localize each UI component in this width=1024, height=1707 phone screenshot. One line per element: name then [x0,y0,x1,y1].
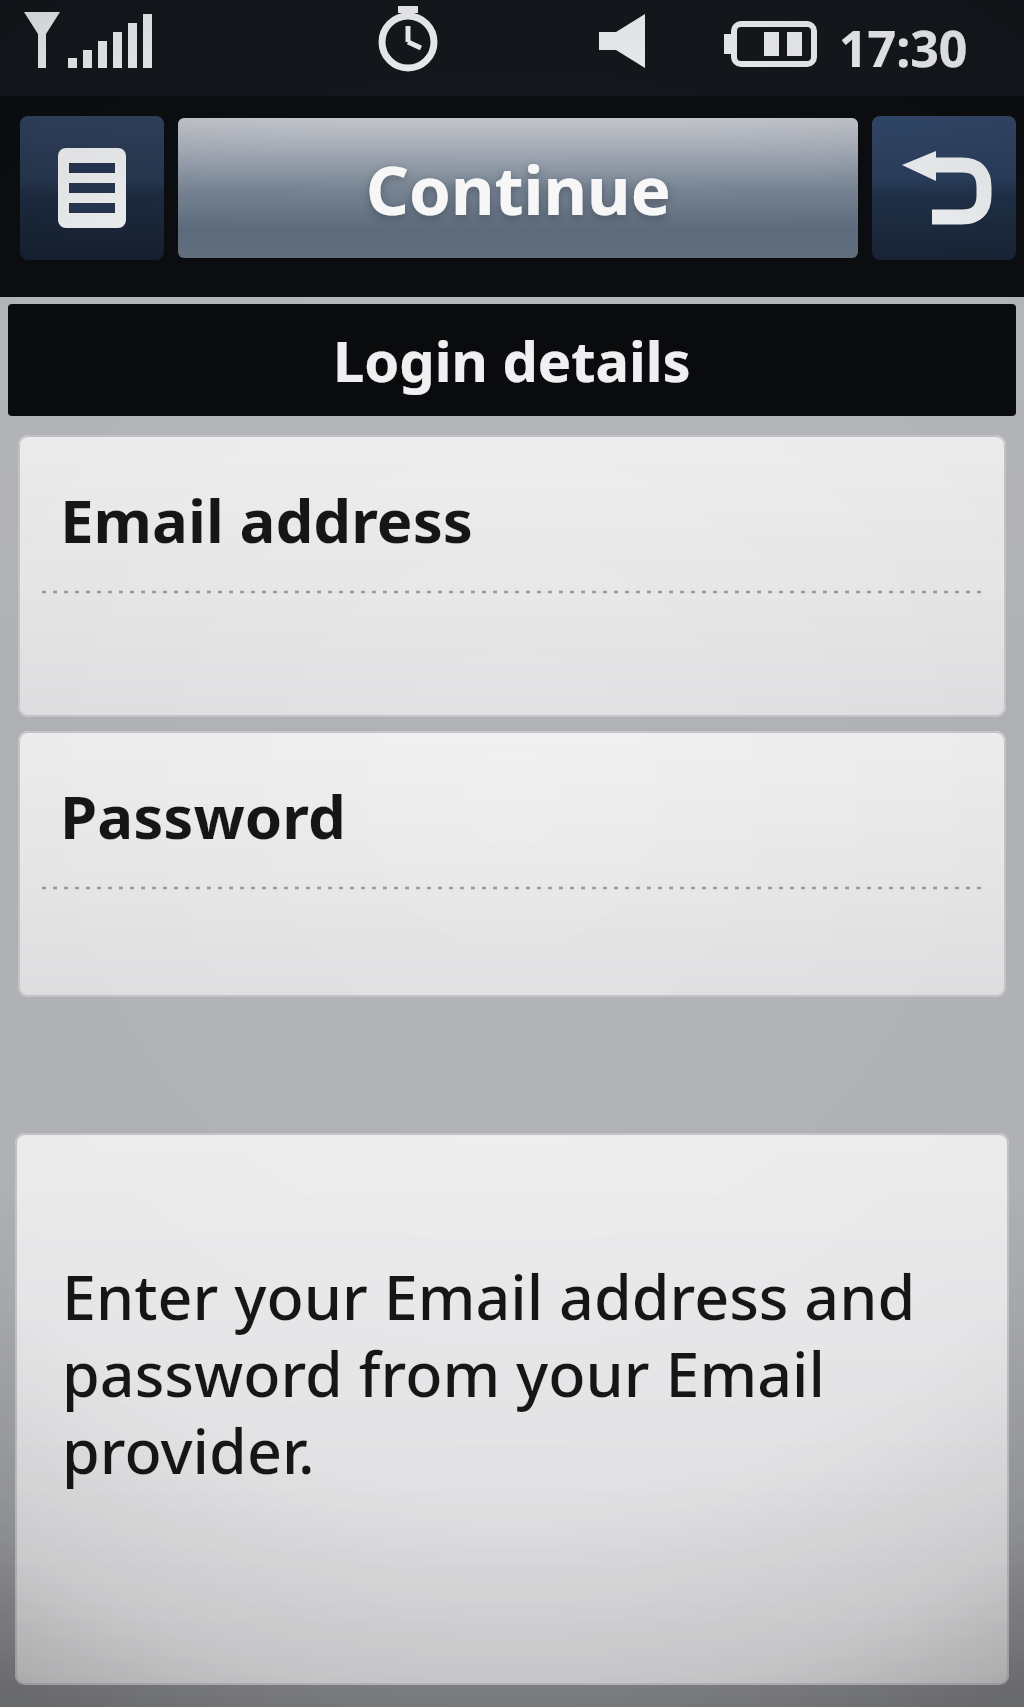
button[interactable] [20,116,164,260]
staticText: Password [60,775,346,857]
staticText: Email address [60,479,473,561]
staticText: 17:30 [839,14,968,82]
staticText: Enter your Email address and password fr… [62,1255,916,1492]
button[interactable]: Email address [18,435,1006,717]
staticText: Login details [333,322,691,398]
staticText: Continue [366,143,671,234]
button[interactable]: Password [18,731,1006,997]
button[interactable] [872,116,1016,260]
button[interactable]: Continue [178,118,858,258]
